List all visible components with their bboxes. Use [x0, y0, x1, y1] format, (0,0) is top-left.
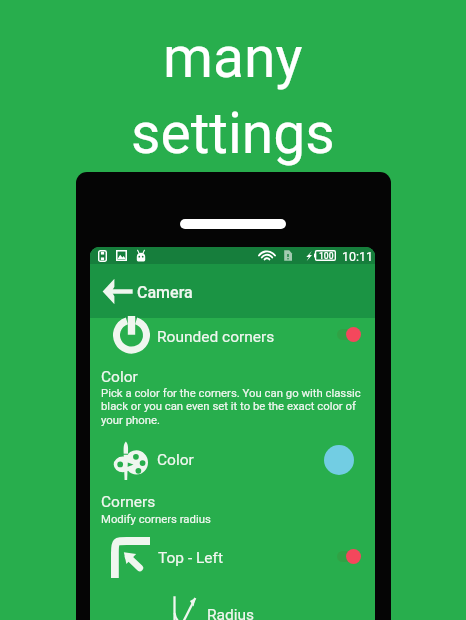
button[interactable]: Color	[90, 437, 375, 483]
staticText: 10:11	[342, 249, 374, 264]
staticText: Top - Left	[158, 549, 224, 567]
staticText: Color	[101, 368, 138, 386]
staticText: 100	[319, 251, 334, 261]
staticText: Rounded corners	[157, 328, 275, 346]
staticText: Color	[157, 451, 194, 469]
staticText: Radius	[207, 606, 255, 620]
button[interactable]: Rounded corners	[90, 313, 375, 360]
staticText: settings	[131, 100, 335, 167]
button[interactable]: Radius	[90, 595, 375, 620]
staticText: many	[163, 24, 303, 91]
staticText: Camera	[137, 283, 193, 302]
staticText: Pick a color for the corners. You can go…	[101, 386, 363, 427]
staticText: Modify corners radius	[101, 512, 211, 525]
staticText: Corners	[101, 493, 156, 511]
button[interactable]: Back	[96, 270, 138, 312]
button[interactable]: Top - Left	[90, 535, 375, 581]
